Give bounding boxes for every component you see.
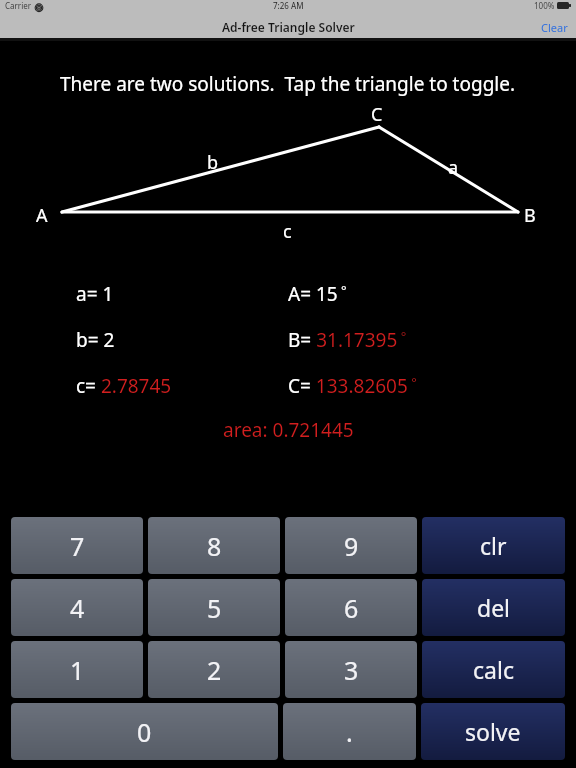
staticText: clr xyxy=(480,530,507,561)
staticText: 7 xyxy=(70,529,85,563)
staticText: 100% xyxy=(534,0,555,11)
staticText: Carrier xyxy=(5,0,32,11)
staticText: area: 0.721445 xyxy=(223,417,354,443)
staticText: B xyxy=(524,203,536,228)
staticText: calc xyxy=(473,654,514,685)
button[interactable]: solve xyxy=(421,703,565,760)
staticText: del xyxy=(477,592,511,623)
staticText: C xyxy=(371,102,383,127)
staticText: c xyxy=(283,219,292,244)
staticText: 2 xyxy=(207,653,222,687)
staticText: 6 xyxy=(344,591,359,625)
staticText: 8 xyxy=(207,529,222,563)
staticText: solve xyxy=(465,716,521,747)
staticText: 4 xyxy=(70,591,85,625)
staticText: 5 xyxy=(207,591,222,625)
staticText: There are two solutions. Tap the triangl… xyxy=(60,71,516,97)
button[interactable]: clr xyxy=(422,517,565,574)
button[interactable]: 1 xyxy=(11,641,143,698)
staticText: A= 15 ° xyxy=(288,281,347,307)
button[interactable]: 2 xyxy=(148,641,280,698)
staticText: 7:26 AM xyxy=(273,0,304,11)
staticText: b xyxy=(207,150,219,175)
button[interactable]: 3 xyxy=(285,641,417,698)
staticText: b= 2 xyxy=(76,327,115,353)
button[interactable]: 9 xyxy=(285,517,417,574)
staticText: Clear xyxy=(541,20,568,35)
staticText: B= 31.17395 ° xyxy=(288,327,407,353)
staticText: 9 xyxy=(344,529,359,563)
button[interactable]: Clear xyxy=(533,18,576,37)
staticText: C= 133.82605 ° xyxy=(288,373,417,399)
button[interactable]: . xyxy=(283,703,416,760)
button[interactable]: 5 xyxy=(148,579,280,636)
staticText: 1 xyxy=(70,653,85,687)
button[interactable]: 6 xyxy=(285,579,417,636)
button[interactable]: del xyxy=(422,579,565,636)
staticText: a xyxy=(448,155,459,180)
button[interactable]: Triangle diagram, tap to toggle xyxy=(0,97,576,269)
staticText: Ad-free Triangle Solver xyxy=(222,19,355,35)
staticText: 3 xyxy=(344,653,359,687)
staticText: . xyxy=(346,715,353,749)
button[interactable]: 8 xyxy=(148,517,280,574)
staticText: A xyxy=(36,203,48,228)
button[interactable]: 7 xyxy=(11,517,143,574)
button[interactable]: calc xyxy=(422,641,565,698)
staticText: 0 xyxy=(137,715,152,749)
staticText: c= 2.78745 xyxy=(76,373,172,399)
button[interactable]: 4 xyxy=(11,579,143,636)
staticText: a= 1 xyxy=(76,281,114,307)
button[interactable]: 0 xyxy=(11,703,278,760)
